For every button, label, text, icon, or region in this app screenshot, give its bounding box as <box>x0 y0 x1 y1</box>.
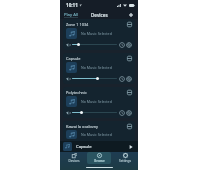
staticText: Browse <box>94 159 105 163</box>
staticText: Settings <box>119 159 131 163</box>
staticText: Play All <box>64 12 79 18</box>
button[interactable]: Group speakers <box>126 55 132 61</box>
staticText: Capsule <box>76 144 92 150</box>
staticText: Kawai la ocalovny <box>66 124 126 129</box>
button[interactable]: Capsule <box>60 141 138 152</box>
button[interactable]: Capsule <box>63 53 135 84</box>
button[interactable]: Group speakers <box>126 123 132 129</box>
staticText: Zone 1 1034 <box>66 22 126 27</box>
staticText: Capsule <box>66 56 126 61</box>
staticText: Devices <box>91 12 108 18</box>
button[interactable]: Settings <box>113 152 137 164</box>
button[interactable]: Browse <box>87 152 111 164</box>
staticText: No Music Selected <box>81 99 112 104</box>
button[interactable]: Kawai la ocalovny <box>63 121 135 141</box>
button[interactable]: Device settings <box>126 110 132 116</box>
button[interactable]: Alarm <box>119 110 125 116</box>
staticText: No Music Selected <box>81 31 112 36</box>
button[interactable]: Alarm <box>119 76 125 82</box>
button[interactable]: Polytechnic <box>63 87 135 118</box>
button[interactable]: Group speakers <box>126 89 132 95</box>
button[interactable]: Alarm <box>119 42 125 48</box>
button[interactable]: Zone 1 1034 <box>63 19 135 50</box>
button[interactable]: Devices <box>62 152 86 164</box>
button[interactable]: Play All <box>60 11 82 19</box>
staticText: 10:11 <box>66 2 78 8</box>
staticText: Polytechnic <box>66 90 126 95</box>
staticText: No Music Selected <box>81 132 112 137</box>
staticText: Devices <box>68 159 80 163</box>
button[interactable]: Device settings <box>126 76 132 82</box>
button[interactable]: Add device <box>127 11 135 19</box>
staticText: No Music Selected <box>81 65 112 70</box>
button[interactable]: Device settings <box>126 42 132 48</box>
button[interactable]: Group speakers <box>126 21 132 27</box>
button[interactable]: Play <box>127 143 135 151</box>
